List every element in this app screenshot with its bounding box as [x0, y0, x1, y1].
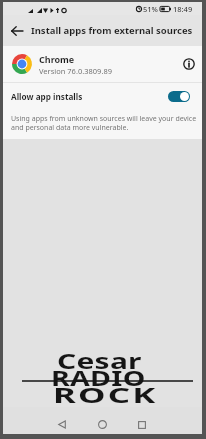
button[interactable]: Back	[3, 15, 31, 46]
staticText: Cesar	[57, 345, 143, 375]
button[interactable]: Back	[42, 415, 82, 434]
staticText: RADIO	[51, 362, 146, 392]
staticText: Using apps from unknown sources will lea…	[11, 114, 197, 132]
staticText: Chrome	[39, 53, 75, 65]
staticText: 51%	[143, 4, 158, 14]
button[interactable]: Allow app installs	[3, 83, 202, 109]
button[interactable]: Recent apps	[122, 415, 162, 434]
staticText: 18:49	[173, 4, 193, 14]
button[interactable]: Chrome	[3, 46, 202, 82]
staticText: Version 76.0.3809.89	[39, 66, 112, 76]
staticText: Install apps from external sources	[31, 24, 193, 37]
button[interactable]: Home	[82, 415, 122, 434]
button[interactable]: App info	[176, 46, 202, 82]
staticText: Allow app installs	[11, 91, 83, 102]
staticText: ROCK	[53, 379, 159, 409]
button[interactable]: Allow app installs	[168, 91, 190, 102]
